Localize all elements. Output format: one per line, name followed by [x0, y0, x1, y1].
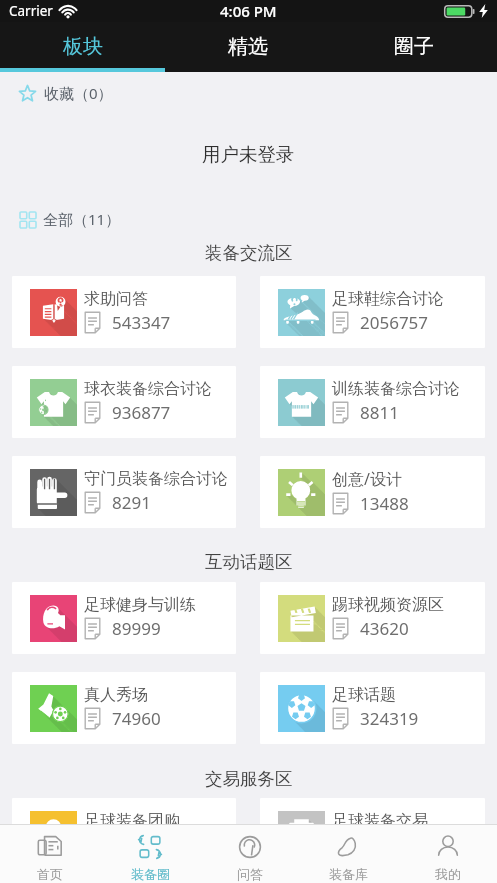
- staticText: 324319: [360, 707, 419, 730]
- button[interactable]: 板块: [0, 22, 165, 72]
- staticText: 936877: [112, 401, 171, 424]
- staticText: 装备圈: [131, 866, 170, 882]
- button[interactable]: 我的: [398, 825, 497, 883]
- staticText: 圈子: [394, 34, 434, 59]
- staticText: 足球健身与训练: [84, 595, 196, 615]
- button[interactable]: 足球鞋综合讨论: [260, 276, 485, 348]
- staticText: 踢球视频资源区: [332, 595, 444, 615]
- staticText: 我的: [435, 866, 461, 882]
- staticText: 问答: [237, 866, 263, 882]
- staticText: 足球装备团购: [84, 811, 180, 831]
- staticText: 8811: [360, 401, 399, 424]
- staticText: 足球话题: [332, 685, 396, 705]
- button[interactable]: 球衣装备综合讨论: [12, 366, 236, 438]
- button[interactable]: 足球健身与训练: [12, 582, 236, 654]
- button[interactable]: 训练装备综合讨论: [260, 366, 485, 438]
- staticText: 创意/设计: [332, 468, 402, 490]
- button[interactable]: 足球话题: [260, 672, 485, 744]
- staticText: 交易服务区: [205, 768, 293, 790]
- staticText: 求助问答: [84, 289, 148, 309]
- button[interactable]: 踢球视频资源区: [260, 582, 485, 654]
- button[interactable]: 真人秀场: [12, 672, 236, 744]
- button[interactable]: 守门员装备综合讨论: [12, 456, 236, 528]
- button[interactable]: 精选: [165, 22, 331, 72]
- button[interactable]: 问答: [200, 825, 299, 883]
- staticText: 543347: [112, 311, 171, 334]
- staticText: 训练装备综合讨论: [332, 379, 460, 399]
- staticText: 互动话题区: [205, 551, 293, 573]
- button[interactable]: 足球装备团购: [12, 798, 236, 870]
- button[interactable]: 求助问答: [12, 276, 236, 348]
- staticText: 收藏（0）: [44, 83, 113, 103]
- staticText: 足球鞋综合讨论: [332, 289, 444, 309]
- staticText: 4:06 PM: [220, 1, 277, 21]
- staticText: 球衣装备综合讨论: [84, 379, 212, 399]
- button[interactable]: 首页: [0, 825, 100, 883]
- staticText: 13488: [360, 492, 409, 515]
- button[interactable]: 圈子: [331, 22, 497, 72]
- staticText: 2056757: [360, 311, 429, 334]
- staticText: 守门员装备综合讨论: [84, 469, 228, 489]
- button[interactable]: 装备库: [299, 825, 398, 883]
- staticText: 43620: [360, 617, 409, 640]
- staticText: 装备库: [329, 866, 368, 882]
- staticText: 精选: [228, 34, 268, 59]
- button[interactable]: 收藏（0）: [0, 72, 497, 114]
- staticText: 首页: [37, 866, 63, 882]
- staticText: 8291: [112, 491, 151, 514]
- staticText: 真人秀场: [84, 685, 148, 705]
- staticText: 74960: [112, 707, 161, 730]
- button[interactable]: 创意/设计: [260, 456, 485, 528]
- staticText: 全部（11）: [43, 209, 121, 229]
- button[interactable]: 足球装备交易: [260, 798, 485, 870]
- staticText: 用户未登录: [202, 143, 295, 166]
- staticText: 足球装备交易: [332, 811, 428, 831]
- staticText: Carrier: [9, 2, 53, 20]
- staticText: 89999: [112, 617, 161, 640]
- button[interactable]: 装备圈: [100, 825, 200, 883]
- button[interactable]: 全部（11）: [0, 194, 497, 244]
- staticText: 装备交流区: [205, 242, 293, 264]
- staticText: 板块: [63, 34, 103, 59]
